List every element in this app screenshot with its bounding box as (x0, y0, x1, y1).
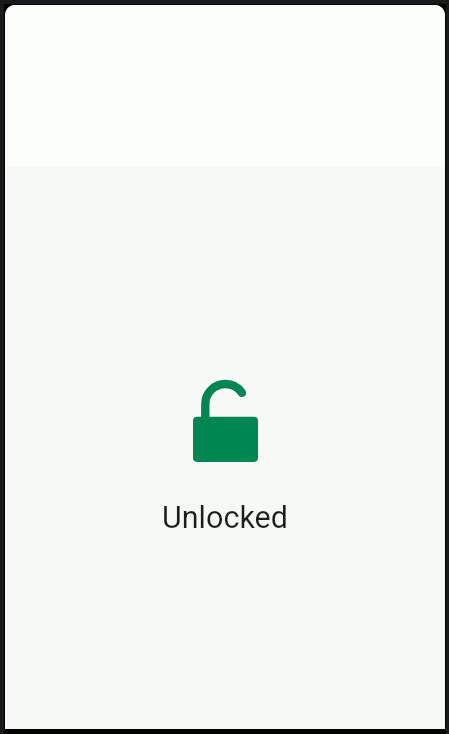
button[interactable]: Unlocked (162, 500, 288, 536)
staticText: Unlocked (162, 500, 288, 536)
button[interactable]: Unlocked (193, 380, 258, 462)
